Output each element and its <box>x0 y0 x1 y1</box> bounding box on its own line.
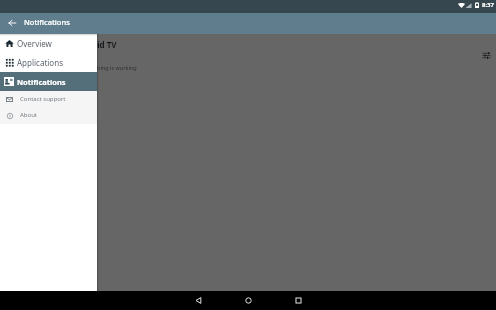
staticText: Android TV <box>73 39 117 50</box>
staticText: About <box>20 111 38 119</box>
button[interactable]: Notifications <box>0 72 97 91</box>
button[interactable]: Applications <box>0 53 97 72</box>
staticText: Notifications <box>17 77 66 87</box>
button[interactable]: About <box>0 107 97 123</box>
staticText: 8:37 <box>482 1 494 9</box>
staticText: Applications <box>17 57 63 68</box>
button[interactable]: Contact support <box>0 91 97 107</box>
button[interactable]: Back <box>0 13 22 34</box>
button[interactable]: Home <box>223 291 273 310</box>
staticText: Contact support <box>20 95 66 103</box>
staticText: Everything is working <box>81 64 137 71</box>
staticText: Notifications <box>24 17 70 27</box>
button[interactable]: Back <box>173 291 223 310</box>
button[interactable]: Overview <box>0 34 97 53</box>
button[interactable]: Settings <box>476 45 496 65</box>
staticText: Overview <box>17 38 52 49</box>
button[interactable]: Recent apps <box>273 291 323 310</box>
